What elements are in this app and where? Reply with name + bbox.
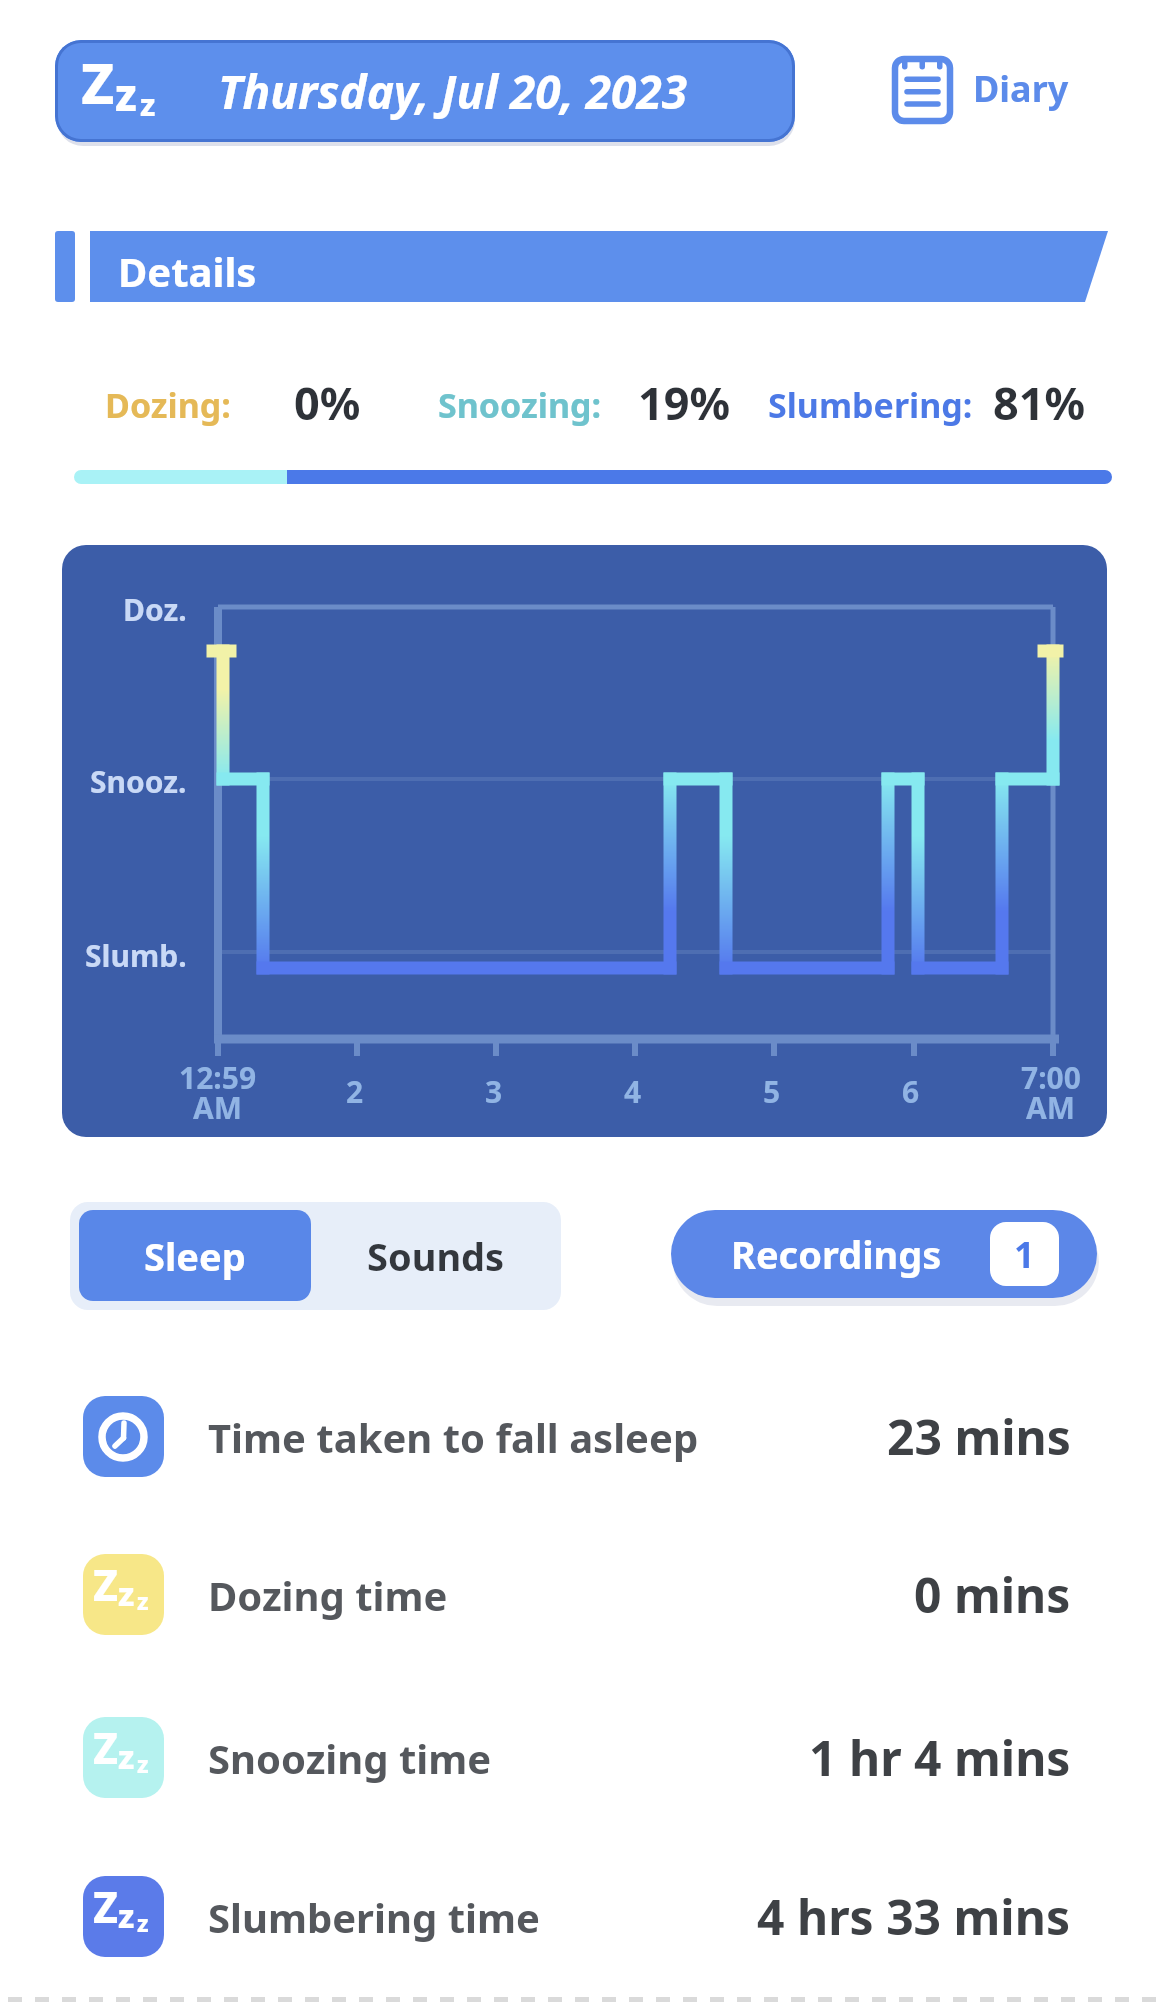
button[interactable]: Diary <box>893 50 1069 126</box>
staticText: Dozing time <box>208 1568 448 1622</box>
staticText: 81% <box>993 372 1086 433</box>
staticText: 0% <box>294 372 361 433</box>
staticText: 4 <box>624 1071 642 1112</box>
staticText: 23 mins <box>887 1404 1071 1469</box>
button[interactable]: Z <box>83 1717 1071 1798</box>
staticText: 5 <box>763 1071 781 1112</box>
staticText: z <box>137 1907 149 1938</box>
staticText: z <box>118 1734 135 1779</box>
staticText: Snooz. <box>90 761 187 802</box>
staticText: Doz. <box>123 589 187 630</box>
staticText: Snoozing time <box>208 1731 492 1785</box>
button[interactable]: Sleep <box>79 1210 311 1301</box>
staticText: z <box>118 1893 135 1938</box>
button[interactable]: Recordings <box>671 1210 1097 1298</box>
staticText: 2 <box>346 1071 364 1112</box>
staticText: z <box>137 1748 149 1779</box>
staticText: 1 <box>1014 1230 1035 1279</box>
staticText: Slumbering time <box>208 1890 540 1944</box>
staticText: Z <box>81 44 115 120</box>
staticText: z <box>118 1571 135 1616</box>
button[interactable]: Z <box>55 40 795 142</box>
staticText: Z <box>93 1556 118 1613</box>
staticText: Z <box>93 1719 118 1776</box>
staticText: z <box>140 83 156 125</box>
staticText: Slumbering: <box>768 382 973 428</box>
staticText: 19% <box>638 372 731 433</box>
staticText: Thursday, Jul 20, 2023 <box>218 60 688 123</box>
staticText: Details <box>118 244 257 298</box>
staticText: Snoozing: <box>438 382 602 428</box>
staticText: 7:00 <box>1021 1057 1081 1098</box>
staticText: AM <box>1026 1087 1076 1128</box>
staticText: 6 <box>902 1071 920 1112</box>
staticText: Diary <box>973 64 1069 113</box>
staticText: 12:59 <box>179 1057 257 1098</box>
staticText: Dozing: <box>105 382 231 428</box>
staticText: Time taken to fall asleep <box>208 1410 699 1464</box>
staticText: z <box>137 1585 149 1616</box>
button[interactable]: Time taken to fall asleep <box>83 1396 1071 1477</box>
staticText: Sounds <box>367 1230 505 1282</box>
staticText: Slumb. <box>85 935 187 976</box>
staticText: 1 hr 4 mins <box>809 1725 1071 1790</box>
button[interactable]: Sounds <box>311 1210 561 1301</box>
staticText: Recordings <box>731 1228 942 1280</box>
button[interactable]: Z <box>83 1876 1071 1957</box>
staticText: Sleep <box>144 1230 246 1282</box>
staticText: 3 <box>485 1071 503 1112</box>
staticText: z <box>115 64 137 123</box>
staticText: AM <box>193 1087 243 1128</box>
staticText: 0 mins <box>914 1562 1071 1627</box>
staticText: 4 hrs 33 mins <box>757 1884 1071 1949</box>
button[interactable]: Z <box>83 1554 1071 1635</box>
staticText: Z <box>93 1878 118 1935</box>
